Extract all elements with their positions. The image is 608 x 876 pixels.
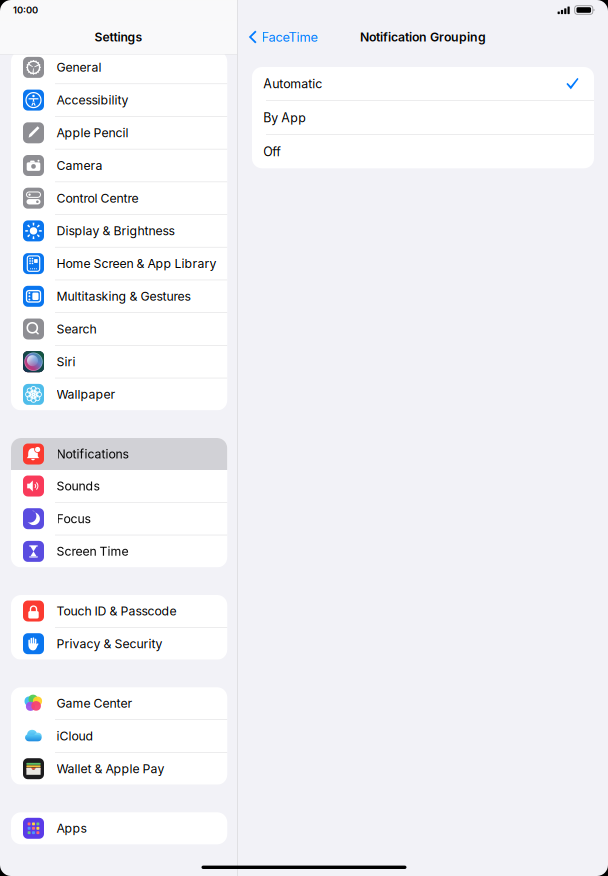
button[interactable]: Siri xyxy=(11,346,227,378)
button[interactable]: General xyxy=(11,51,227,83)
button[interactable]: Touch ID & Passcode xyxy=(11,595,227,627)
button[interactable]: Automatic xyxy=(252,67,594,100)
button[interactable]: Sounds xyxy=(11,470,227,502)
staticText: Display & Brightness xyxy=(57,223,175,238)
staticText: Touch ID & Passcode xyxy=(57,604,177,618)
button[interactable]: Privacy & Security xyxy=(11,628,227,660)
button[interactable]: FaceTime xyxy=(238,20,325,54)
staticText: By App xyxy=(263,110,306,125)
staticText: Accessibility xyxy=(57,93,129,107)
staticText: FaceTime xyxy=(261,29,317,45)
staticText: General xyxy=(57,60,102,75)
button[interactable]: Wallet & Apple Pay xyxy=(11,753,227,785)
staticText: iCloud xyxy=(57,729,94,743)
button[interactable]: Off xyxy=(252,135,594,168)
button[interactable]: By App xyxy=(252,101,594,134)
staticText: Off xyxy=(263,144,281,159)
staticText: Sounds xyxy=(57,479,100,493)
staticText: Privacy & Security xyxy=(57,636,163,651)
staticText: Siri xyxy=(57,354,76,369)
button[interactable]: Home Screen & App Library xyxy=(11,248,227,280)
button[interactable]: Notifications xyxy=(11,438,227,470)
staticText: Focus xyxy=(57,511,91,526)
button[interactable]: Accessibility xyxy=(11,84,227,116)
staticText: Settings xyxy=(95,30,143,44)
staticText: Notifications xyxy=(57,447,129,461)
staticText: 10:00 xyxy=(13,4,38,16)
button[interactable]: Game Center xyxy=(11,687,227,719)
staticText: Multitasking & Gestures xyxy=(57,289,191,304)
button[interactable]: Wallpaper xyxy=(11,378,227,410)
staticText: Screen Time xyxy=(57,544,129,559)
staticText: Control Centre xyxy=(57,191,139,206)
staticText: Search xyxy=(57,322,97,336)
staticText: Home Screen & App Library xyxy=(57,256,217,271)
staticText: Notification Grouping xyxy=(360,30,486,44)
staticText: Wallet & Apple Pay xyxy=(57,761,165,776)
button[interactable]: Camera xyxy=(11,149,227,181)
button[interactable]: Focus xyxy=(11,503,227,535)
staticText: Apple Pencil xyxy=(57,125,129,140)
button[interactable]: Screen Time xyxy=(11,535,227,567)
staticText: Wallpaper xyxy=(57,387,116,402)
staticText: Game Center xyxy=(57,696,133,711)
button[interactable]: Apple Pencil xyxy=(11,117,227,149)
button[interactable]: Apps xyxy=(11,812,227,844)
button[interactable]: Multitasking & Gestures xyxy=(11,280,227,312)
button[interactable]: Search xyxy=(11,313,227,345)
staticText: Automatic xyxy=(263,76,322,91)
staticText: Apps xyxy=(57,821,87,836)
staticText: Camera xyxy=(57,158,103,173)
button[interactable]: Display & Brightness xyxy=(11,215,227,247)
button[interactable]: iCloud xyxy=(11,720,227,752)
button[interactable]: Control Centre xyxy=(11,182,227,214)
